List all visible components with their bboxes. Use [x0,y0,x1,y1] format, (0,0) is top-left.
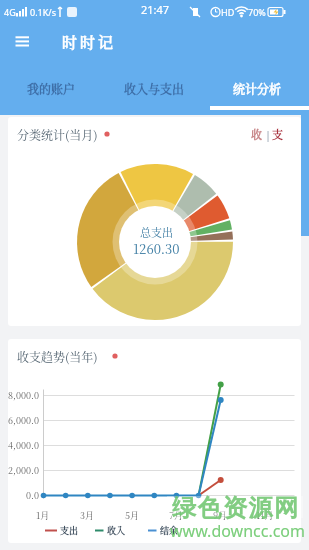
button[interactable] [13,34,33,50]
staticText: 统计分析 [233,80,282,97]
staticText: 分类统计(当月) [17,126,98,143]
staticText: 1260.30 [133,239,180,258]
staticText: HD [221,6,235,18]
staticText: 1月 [36,509,50,522]
staticText: 收入 [107,524,126,537]
staticText: 6,000.0 [8,414,39,427]
staticText: 支 [272,126,283,142]
staticText: www.downcc.com [170,520,306,542]
staticText: 9月 [213,509,228,522]
staticText: 2,000.0 [8,464,39,477]
button[interactable]: 统计分析 [206,72,309,104]
staticText: | [265,127,272,142]
staticText: 时时记 [62,31,117,53]
staticText: 收入与支出 [124,80,185,97]
staticText: 5月 [125,509,140,522]
staticText: 我的账户 [27,80,76,97]
staticText: 0.0 [26,489,39,502]
staticText: 支出 [60,524,79,537]
staticText: 4,000.0 [8,439,39,452]
staticText: 总支出 [140,224,173,240]
staticText: 绿色资源网 [172,493,300,521]
staticText: 4G [4,6,16,18]
staticText: 7月 [169,509,183,522]
button[interactable] [243,122,291,146]
staticText: 11月 [256,509,274,522]
staticText: 收支趋势(当年) [17,348,98,365]
staticText: 8,000.0 [8,389,39,402]
staticText: 结余 [160,524,179,537]
button[interactable]: 我的账户 [0,72,103,104]
staticText: 3月 [80,509,95,522]
staticText: 70% [248,6,266,18]
staticText: 收 [251,126,262,142]
staticText: 21:47 [141,2,170,17]
button[interactable]: 收入与支出 [103,72,206,104]
staticText: 0.1K/s [30,6,56,18]
